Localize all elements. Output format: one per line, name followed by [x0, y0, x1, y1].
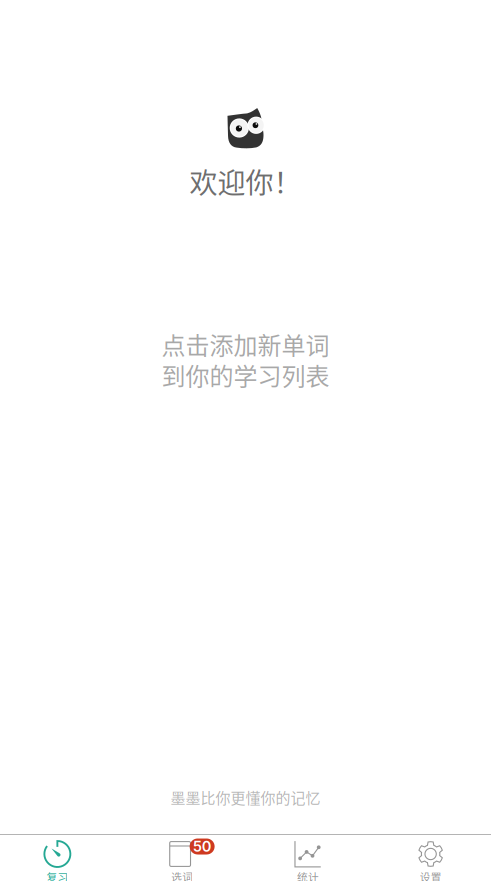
staticText: 统计 [297, 869, 319, 881]
button[interactable]: 50 [123, 835, 246, 881]
staticText: 设置 [420, 869, 442, 881]
staticText: 点击添加新单词 [161, 326, 329, 361]
staticText: 欢迎你！ [189, 161, 301, 201]
button[interactable]: 统计 [245, 835, 368, 881]
button[interactable]: 设置 [368, 835, 491, 881]
staticText: 50 [193, 838, 212, 855]
staticText: 墨墨比你更懂你的记忆 [170, 786, 320, 808]
staticText: 到你的学习列表 [161, 357, 329, 392]
staticText: 复习 [46, 869, 68, 881]
staticText: 选词 [171, 869, 193, 881]
button[interactable]: 复习 [0, 835, 123, 881]
